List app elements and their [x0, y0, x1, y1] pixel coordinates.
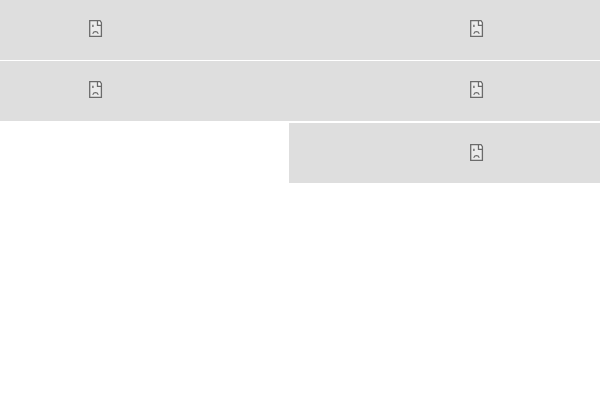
other: Image unavailable: [470, 20, 483, 37]
other: Image unavailable: [89, 20, 102, 37]
other: Image unavailable: [89, 81, 102, 98]
button[interactable]: Image unavailable: [0, 0, 600, 60]
button[interactable]: Image unavailable: [289, 123, 600, 183]
button[interactable]: Image unavailable: [0, 61, 600, 121]
other: Image unavailable: [470, 81, 483, 98]
other: Image unavailable: [470, 144, 483, 161]
